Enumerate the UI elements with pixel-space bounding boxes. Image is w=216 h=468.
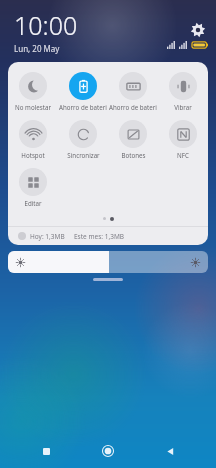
staticText: Hoy: 1,3MB [30, 232, 65, 241]
staticText: NFC [177, 151, 189, 159]
button[interactable]: Vibrar [158, 70, 208, 113]
button[interactable]: Sincronizar [58, 118, 108, 161]
staticText: No molestar [15, 103, 51, 111]
button[interactable]: Recent apps [29, 434, 63, 468]
staticText: Botones [121, 151, 146, 159]
button[interactable]: Hotspot [8, 118, 58, 161]
staticText: 10:00 [14, 8, 78, 42]
staticText: Vibrar [174, 103, 192, 111]
staticText: Hotspot [21, 151, 45, 159]
button[interactable]: Back [153, 434, 187, 468]
button[interactable]: Botones [108, 118, 158, 161]
button[interactable]: Ahorro de bateri [108, 70, 158, 113]
staticText: Editar [24, 199, 42, 207]
staticText: Este mes: 1,3MB [74, 232, 125, 241]
button[interactable]: Settings [190, 22, 206, 38]
staticText: Sincronizar [67, 151, 100, 159]
staticText: Lun, 20 May [14, 43, 60, 54]
staticText: Ahorro de bateri [59, 103, 107, 111]
button[interactable]: NFC [158, 118, 208, 161]
button[interactable]: No molestar [8, 70, 58, 113]
button[interactable]: Home [91, 434, 125, 468]
button[interactable]: Editar [8, 166, 58, 209]
staticText: Ahorro de bateri [109, 103, 157, 111]
button[interactable]: Ahorro de bateri [58, 70, 108, 113]
button[interactable]: Brightness [8, 251, 208, 273]
